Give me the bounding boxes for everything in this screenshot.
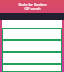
staticText: Shake for Random GIF search (18, 3, 47, 11)
button[interactable] (2, 28, 62, 40)
button[interactable] (2, 40, 62, 52)
button[interactable] (2, 64, 62, 72)
button[interactable] (2, 52, 62, 64)
